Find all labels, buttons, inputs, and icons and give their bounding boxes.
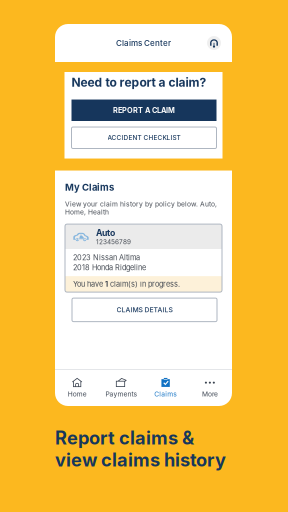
staticText: You have (73, 280, 105, 289)
staticText: 123456789 (96, 238, 131, 246)
staticText: Report claims & (55, 427, 194, 449)
staticText: View your claim history by policy below.… (65, 200, 217, 216)
staticText: Claims (154, 390, 177, 398)
button[interactable]: ACCIDENT CHECKLIST (71, 127, 216, 148)
button[interactable]: Payments (99, 370, 143, 406)
staticText: REPORT A CLAIM (113, 106, 175, 115)
staticText: view claims history (55, 449, 226, 471)
staticText: 2023 Nissan Altima (73, 253, 140, 262)
staticText: 2018 Honda Ridgeline (73, 263, 146, 272)
button[interactable]: Contact support (205, 34, 223, 52)
staticText: 1 (105, 280, 108, 289)
button[interactable]: Home (55, 370, 99, 406)
button[interactable]: REPORT A CLAIM (71, 99, 216, 121)
staticText: Need to report a claim? (71, 75, 206, 89)
staticText: My Claims (65, 181, 114, 193)
staticText: More (202, 390, 218, 398)
staticText: Auto (96, 227, 115, 238)
staticText: CLAIMS DETAILS (116, 306, 172, 314)
staticText: claim(s) in progress. (108, 280, 180, 289)
button[interactable]: More (188, 370, 232, 406)
button[interactable]: Claims (143, 370, 188, 406)
staticText: ACCIDENT CHECKLIST (107, 134, 180, 142)
staticText: Claims Center (116, 38, 171, 48)
staticText: Payments (105, 390, 137, 398)
staticText: Home (68, 390, 87, 398)
button[interactable]: CLAIMS DETAILS (72, 298, 217, 322)
